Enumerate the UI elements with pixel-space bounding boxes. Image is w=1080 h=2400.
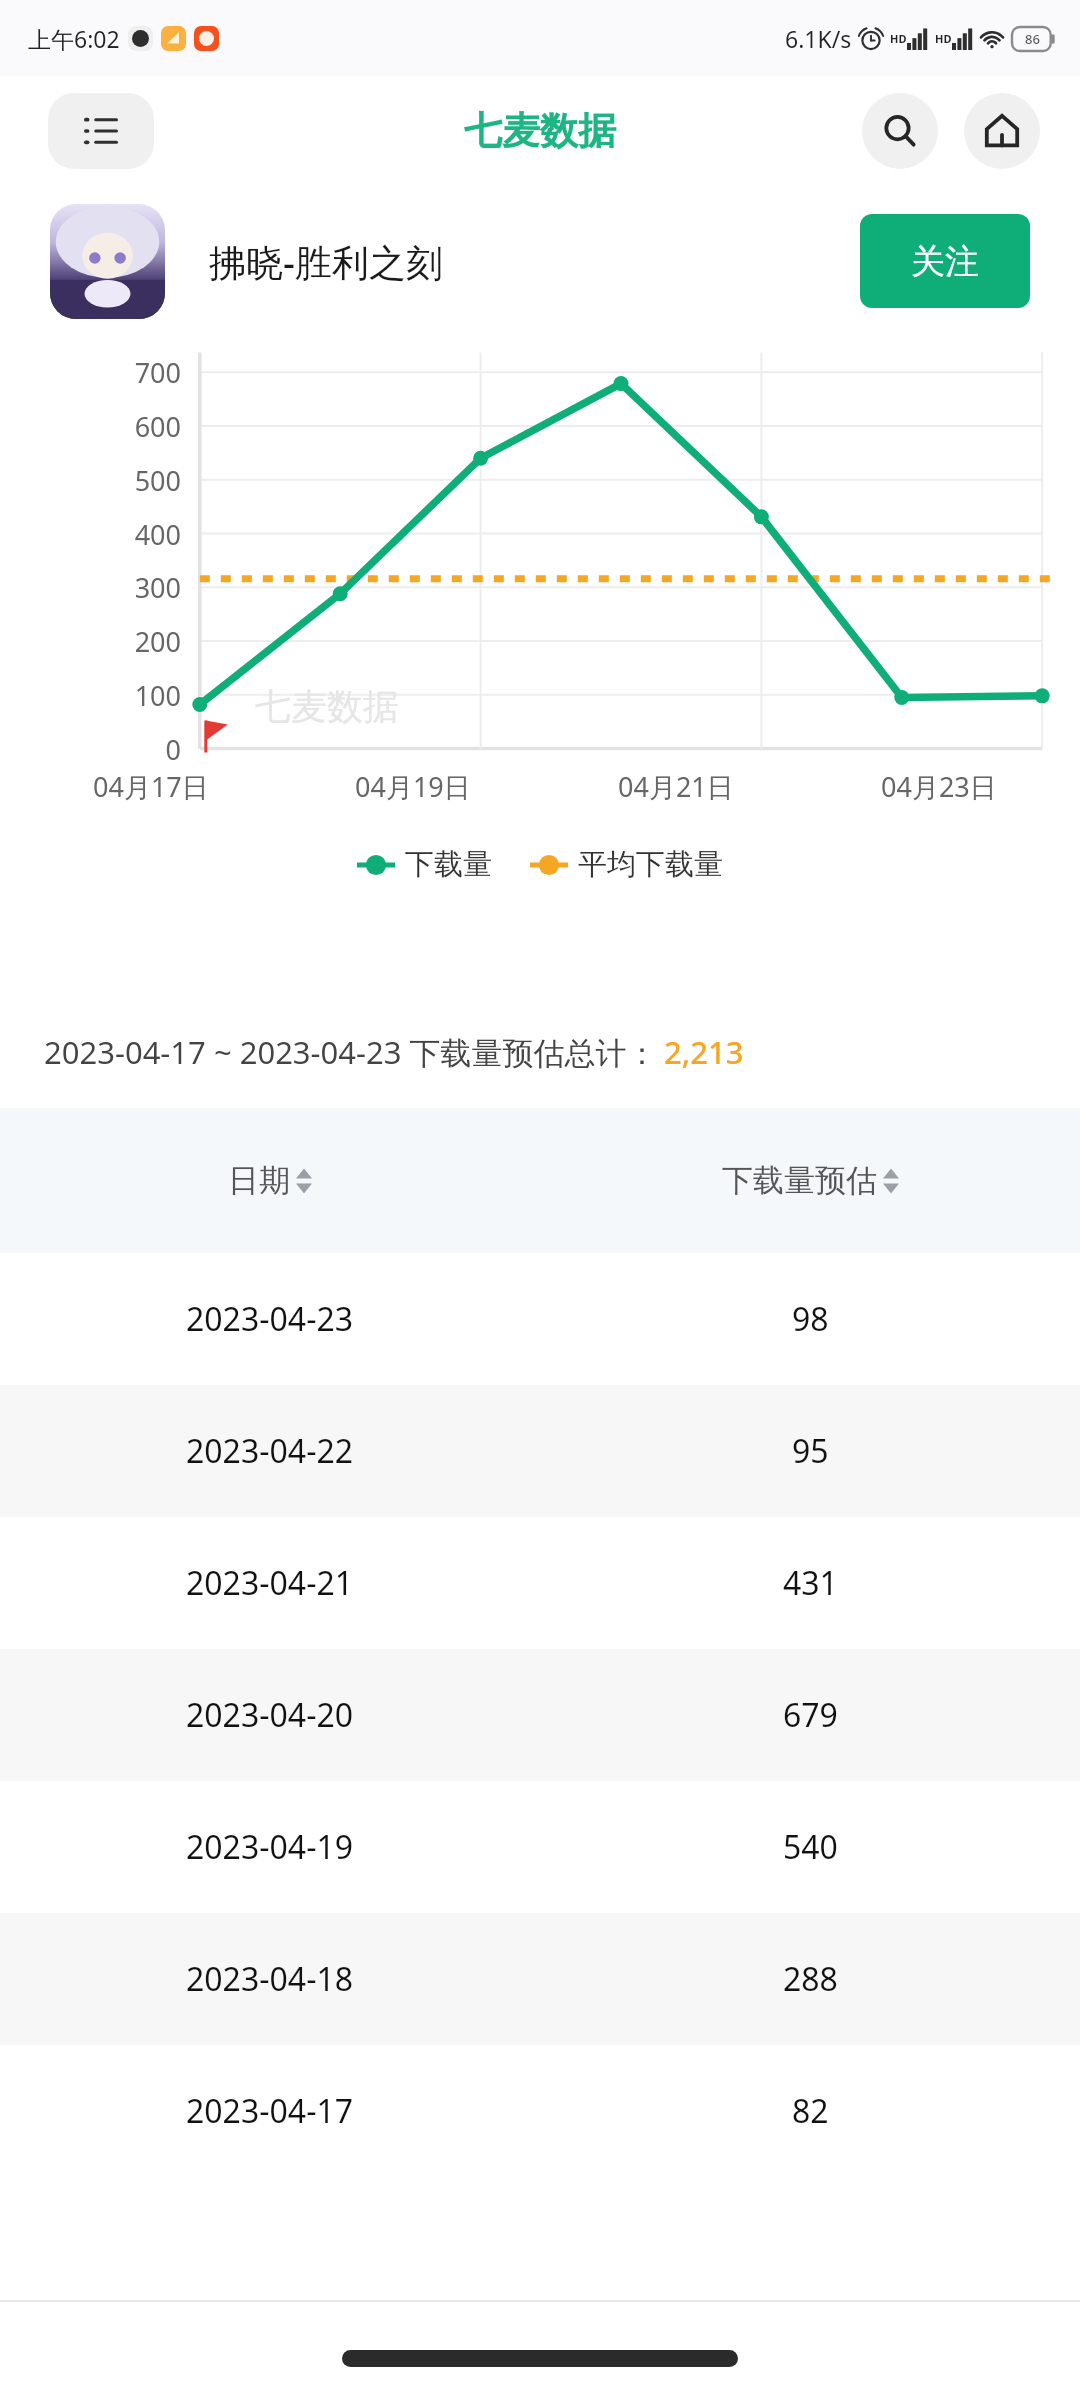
staticText: 288 xyxy=(783,1957,838,2001)
staticText: 关注 xyxy=(911,240,979,283)
staticText: 0 xyxy=(0,731,181,768)
staticText: 300 xyxy=(0,569,181,606)
staticText: 下载量预估 xyxy=(722,1161,877,1200)
staticText: 2023-04-19 xyxy=(186,1825,354,1869)
staticText: 04月21日 xyxy=(618,768,734,805)
staticText: 04月17日 xyxy=(93,768,209,805)
staticText: 04月19日 xyxy=(355,768,471,805)
staticText: 2023-04-22 xyxy=(186,1429,354,1473)
staticText: 400 xyxy=(0,516,181,553)
staticText: 拂晓-胜利之刻 xyxy=(209,236,443,287)
button[interactable]: 2023-04-18 xyxy=(0,1913,1080,2045)
staticText: 679 xyxy=(783,1693,838,1737)
staticText: 下载量 xyxy=(405,846,492,883)
button[interactable]: 2023-04-17 xyxy=(0,2045,1080,2177)
button[interactable]: 2023-04-19 xyxy=(0,1781,1080,1913)
staticText: 2023-04-23 xyxy=(186,1297,354,1341)
button[interactable]: 2023-04-21 xyxy=(0,1517,1080,1649)
button[interactable]: 2023-04-20 xyxy=(0,1649,1080,1781)
staticText: 6.1K/s xyxy=(785,23,852,54)
staticText: 2023-04-17 ~ 2023-04-23 下载量预估总计： xyxy=(44,1031,658,1073)
button[interactable]: 拂晓-胜利之刻 xyxy=(0,186,1080,336)
button[interactable]: 关注 xyxy=(860,214,1030,308)
button[interactable]: 日期 xyxy=(228,1161,312,1200)
staticText: 日期 xyxy=(228,1161,290,1200)
staticText: 86 xyxy=(1025,30,1040,48)
staticText: 82 xyxy=(792,2089,829,2133)
staticText: 100 xyxy=(0,677,181,714)
staticText: 平均下载量 xyxy=(578,846,723,883)
button[interactable]: 2023-04-22 xyxy=(0,1385,1080,1517)
staticText: 600 xyxy=(0,408,181,445)
button[interactable]: 下载量预估 xyxy=(722,1161,899,1200)
staticText: 上午6:02 xyxy=(28,23,120,54)
staticText: 04月23日 xyxy=(881,768,997,805)
staticText: 2023-04-18 xyxy=(186,1957,354,2001)
staticText: 431 xyxy=(783,1561,838,1605)
button[interactable]: Search xyxy=(862,93,938,169)
staticText: 500 xyxy=(0,462,181,499)
staticText: HD xyxy=(935,31,952,46)
button[interactable]: 2023-04-23 xyxy=(0,1253,1080,1385)
button[interactable]: Home xyxy=(964,93,1040,169)
staticText: 95 xyxy=(792,1429,829,1473)
staticText: 2023-04-21 xyxy=(186,1561,354,1605)
staticText: 540 xyxy=(783,1825,838,1869)
staticText: 七麦数据 xyxy=(464,107,616,155)
staticText: 700 xyxy=(0,354,181,391)
button[interactable]: Menu xyxy=(48,93,154,169)
staticText: 七麦数据 xyxy=(255,684,399,729)
staticText: 98 xyxy=(792,1297,829,1341)
staticText: HD xyxy=(890,31,907,46)
staticText: 200 xyxy=(0,623,181,660)
staticText: 2023-04-17 xyxy=(186,2089,354,2133)
staticText: 2023-04-20 xyxy=(186,1693,354,1737)
staticText: 2,213 xyxy=(664,1031,744,1073)
